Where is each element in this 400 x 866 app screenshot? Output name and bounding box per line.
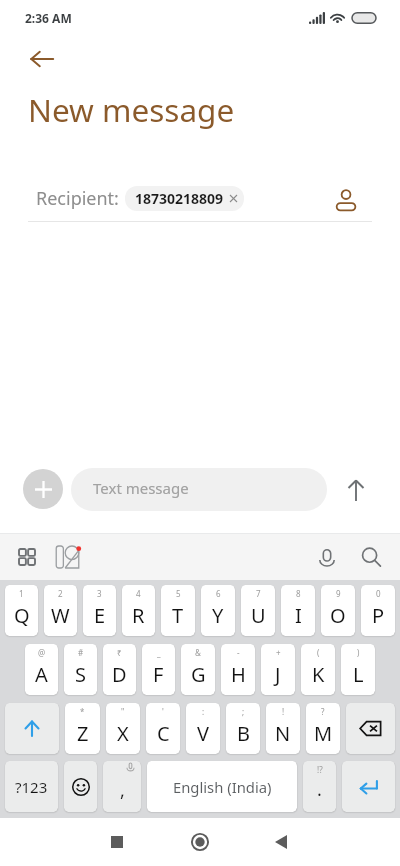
button[interactable]: - [221,644,255,695]
staticText: ₹ [117,647,122,658]
staticText: @ [38,647,46,658]
button[interactable]: " [106,703,140,754]
staticText: ; [242,706,245,717]
staticText: V [197,720,209,747]
staticText: ? [321,706,325,717]
button[interactable]: , [103,761,141,812]
button[interactable]: 8 [281,585,315,636]
button[interactable]: Search [356,542,386,572]
staticText: * [80,706,85,717]
button[interactable]: Home [180,822,220,862]
staticText: O [330,602,346,629]
button[interactable]: ) [341,644,375,695]
staticText: ! [282,706,285,717]
button[interactable]: !? [303,761,336,812]
staticText: !? [317,764,323,775]
button[interactable]: ; [226,703,260,754]
staticText: R [132,602,145,629]
staticText: , [120,778,125,803]
button[interactable]: Text message [71,468,327,511]
staticText: B [237,720,250,747]
button[interactable]: * [65,703,100,754]
staticText: ?123 [15,777,48,797]
button[interactable]: 18730218809 [125,186,244,211]
button[interactable]: 3 [83,585,116,636]
staticText: W [51,602,70,629]
button[interactable]: @ [25,644,58,695]
button[interactable]: 5 [161,585,195,636]
button[interactable]: _ [142,644,175,695]
button[interactable]: 1 [5,585,38,636]
staticText: Text message [93,478,189,498]
staticText: New message [28,88,235,131]
button[interactable]: & [181,644,215,695]
staticText: S [75,661,86,688]
staticText: ' [162,706,164,717]
button[interactable]: Shift [5,703,59,754]
button[interactable]: 0 [361,585,395,636]
staticText: 2:36 AM [25,10,72,26]
button[interactable]: ?123 [5,761,58,812]
staticText: E [94,602,106,629]
staticText: 1 [19,588,24,599]
staticText: J [275,661,281,688]
staticText: M [314,720,333,747]
button[interactable]: Add contact [323,178,367,222]
staticText: 18730218809 [135,189,224,208]
staticText: P [372,602,385,629]
staticText: A [35,661,48,688]
button[interactable]: 9 [321,585,355,636]
button[interactable]: 2 [44,585,77,636]
button[interactable]: 7 [241,585,275,636]
button[interactable]: Emoji [64,761,97,812]
button[interactable]: Back [20,37,64,81]
button[interactable]: Apps [12,542,42,572]
button[interactable]: Backspace [346,703,395,754]
button[interactable]: 4 [122,585,155,636]
button[interactable]: Back [261,822,301,862]
staticText: 3 [97,588,102,599]
staticText: English (India) [173,777,272,797]
button[interactable]: Send [334,468,378,512]
staticText: 2 [58,588,63,599]
staticText: Y [212,602,224,629]
staticText: " [121,706,125,717]
staticText: C [157,720,170,747]
button[interactable]: ₹ [103,644,136,695]
button[interactable]: Add attachment [23,469,63,509]
button[interactable]: 6 [201,585,235,636]
staticText: & [195,647,201,658]
staticText: 9 [336,588,341,599]
button[interactable]: ! [266,703,300,754]
staticText: 5 [176,588,181,599]
staticText: X [117,720,129,747]
staticText: ( [317,647,320,658]
staticText: - [237,647,240,658]
staticText: I [295,602,302,629]
staticText: Z [77,720,89,747]
staticText: K [312,661,325,688]
staticText: H [231,661,246,688]
button[interactable]: Enter [342,761,395,812]
button[interactable]: Voice input [312,542,342,572]
button[interactable]: Stickers [52,542,82,572]
staticText: _ [157,647,161,658]
button[interactable]: # [64,644,97,695]
button[interactable]: ( [301,644,335,695]
staticText: Q [14,602,30,629]
button[interactable]: ? [306,703,340,754]
staticText: F [153,661,164,688]
staticText: 0 [376,588,381,599]
button[interactable]: ' [146,703,180,754]
button[interactable]: : [186,703,220,754]
staticText: 6 [216,588,221,599]
button[interactable]: + [261,644,295,695]
staticText: T [172,602,184,629]
button[interactable]: Recent apps [97,822,137,862]
staticText: : [202,706,205,717]
staticText: # [78,647,84,658]
staticText: Recipient: [36,186,119,211]
staticText: 7 [256,588,261,599]
button[interactable]: English (India) [147,761,297,812]
staticText: . [317,777,322,802]
